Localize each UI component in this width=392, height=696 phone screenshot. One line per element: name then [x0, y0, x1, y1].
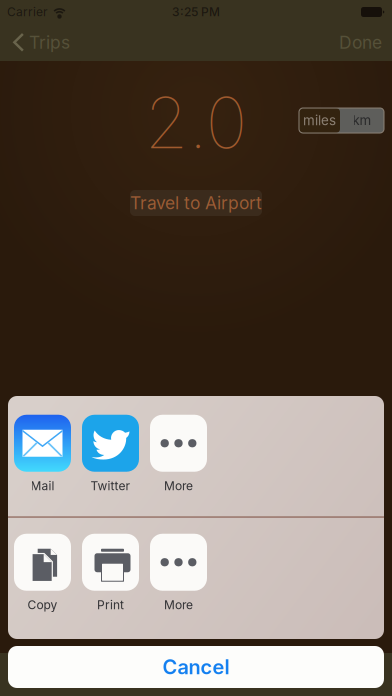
- staticText: 2.0: [144, 80, 247, 165]
- staticText: Mail: [30, 479, 54, 493]
- staticText: Done: [339, 32, 382, 53]
- staticText: miles: [303, 112, 336, 128]
- button[interactable]: Twitter: [82, 417, 139, 491]
- staticText: Travel to Airport: [130, 192, 262, 213]
- button[interactable]: Print: [82, 536, 139, 610]
- staticText: Carrier: [7, 5, 48, 19]
- button[interactable]: More: [150, 417, 207, 491]
- button[interactable]: Copy: [14, 536, 71, 610]
- staticText: More: [164, 479, 193, 493]
- staticText: More: [164, 598, 193, 612]
- button[interactable]: Mail: [14, 417, 71, 491]
- staticText: Copy: [27, 598, 57, 612]
- button[interactable]: More: [150, 536, 207, 610]
- staticText: Cancel: [162, 655, 229, 679]
- staticText: km: [352, 112, 371, 128]
- staticText: Twitter: [90, 479, 130, 493]
- staticText: Trips: [29, 32, 70, 53]
- button[interactable]: Trips: [0, 24, 86, 61]
- button[interactable]: miles: [299, 108, 340, 133]
- button[interactable]: Done: [312, 24, 382, 61]
- staticText: 3:25 PM: [172, 5, 220, 19]
- staticText: Print: [97, 598, 124, 612]
- button[interactable]: Cancel: [8, 646, 384, 688]
- button[interactable]: km: [340, 108, 384, 133]
